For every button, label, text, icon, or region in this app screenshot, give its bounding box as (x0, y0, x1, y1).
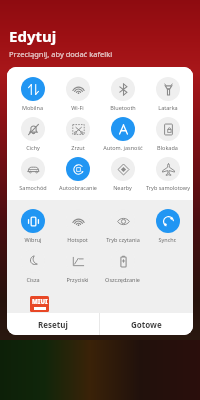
button[interactable]: Bluetooth (100, 74, 145, 114)
button[interactable]: Resetuj (7, 313, 99, 335)
staticText: Autoobracanie (59, 184, 97, 191)
staticText: Zrzut (71, 144, 85, 151)
staticText: Przeciągnij, aby dodać kafelki (9, 49, 113, 59)
staticText: Gotowe (131, 319, 162, 330)
staticText: Resetuj (38, 319, 68, 330)
button[interactable]: Zrzut (55, 114, 100, 154)
button[interactable]: Hotspot (55, 206, 100, 246)
staticText: Wibruj (24, 236, 42, 243)
button[interactable]: Gotowe (100, 313, 193, 335)
staticText: Latarka (158, 104, 178, 111)
staticText: Cisza (26, 276, 40, 283)
staticText: Samochód (19, 184, 47, 191)
staticText: Autom. jasność (103, 144, 143, 151)
staticText: Synchr. (158, 236, 177, 243)
staticText: Hotspot (67, 236, 88, 243)
button[interactable]: Autoobracanie (55, 154, 100, 194)
button[interactable]: Samochód (10, 154, 55, 194)
staticText: Oszczędzanie (105, 276, 140, 283)
staticText: Przyciski (66, 276, 89, 283)
button[interactable]: Mobilna transmisja (10, 74, 55, 114)
button[interactable]: Cisza (10, 246, 55, 286)
button[interactable]: Autom. jasność (100, 114, 145, 154)
button[interactable]: Tryb czytania (100, 206, 145, 246)
staticText: MIUI (32, 298, 48, 306)
button[interactable]: Blokada (145, 114, 190, 154)
staticText: Cichy (26, 144, 40, 151)
button[interactable]: Latarka (145, 74, 190, 114)
staticText: Edytuj (9, 26, 57, 46)
staticText: Tryb samolotowy (146, 184, 190, 191)
button[interactable]: Wi-Fi (55, 74, 100, 114)
button[interactable]: Przyciski (55, 246, 100, 286)
staticText: Tryb czytania (106, 236, 140, 243)
staticText: Mobilna transmisja (10, 104, 55, 111)
button[interactable]: Nearby (100, 154, 145, 194)
staticText: Blokada (157, 144, 178, 151)
button[interactable]: Cichy (10, 114, 55, 154)
staticText: Wi-Fi (71, 104, 84, 111)
staticText: Bluetooth (110, 104, 136, 111)
button[interactable]: Oszczędzanie (100, 246, 145, 286)
button[interactable]: Wibruj (10, 206, 55, 246)
button[interactable]: Tryb samolotowy (145, 154, 190, 194)
button[interactable]: Synchr. (145, 206, 190, 246)
staticText: Nearby (113, 184, 132, 191)
